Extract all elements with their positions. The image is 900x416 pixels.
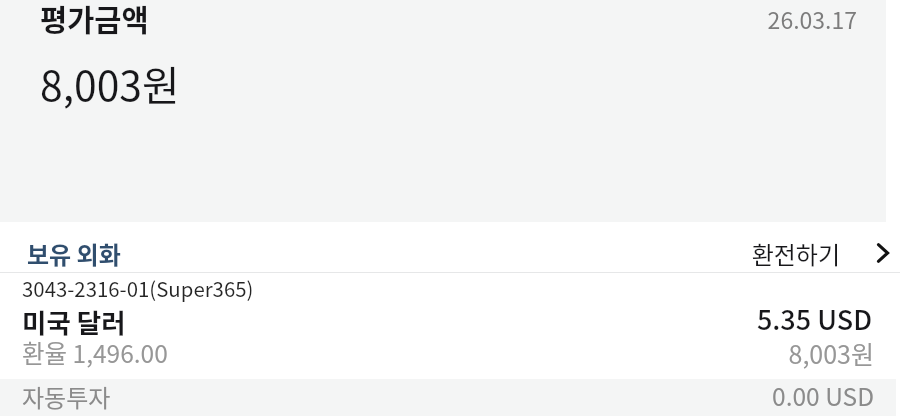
staticText: 보유 외화 bbox=[27, 236, 121, 271]
staticText: 8,003원 bbox=[40, 54, 180, 113]
staticText: 0.00 USD bbox=[0, 378, 874, 413]
staticText: 환전하기 bbox=[0, 236, 840, 271]
staticText: 5.35 USD bbox=[0, 299, 872, 338]
button[interactable]: 보유 외화 bbox=[0, 222, 900, 272]
staticText: 평가금액 bbox=[40, 0, 149, 40]
button[interactable]: 3043-2316-01(Super365) bbox=[0, 273, 900, 379]
staticText: 8,003원 bbox=[0, 335, 874, 371]
button[interactable]: 자동투자 bbox=[0, 379, 900, 416]
staticText: 자동투자 bbox=[22, 379, 111, 414]
staticText: 미국 달러 bbox=[22, 302, 126, 340]
staticText: 26.03.17 bbox=[0, 2, 857, 35]
other: 환전하기 bbox=[871, 241, 895, 265]
staticText: 환율 1,496.00 bbox=[22, 335, 168, 370]
staticText: 3043-2316-01(Super365) bbox=[22, 273, 254, 303]
